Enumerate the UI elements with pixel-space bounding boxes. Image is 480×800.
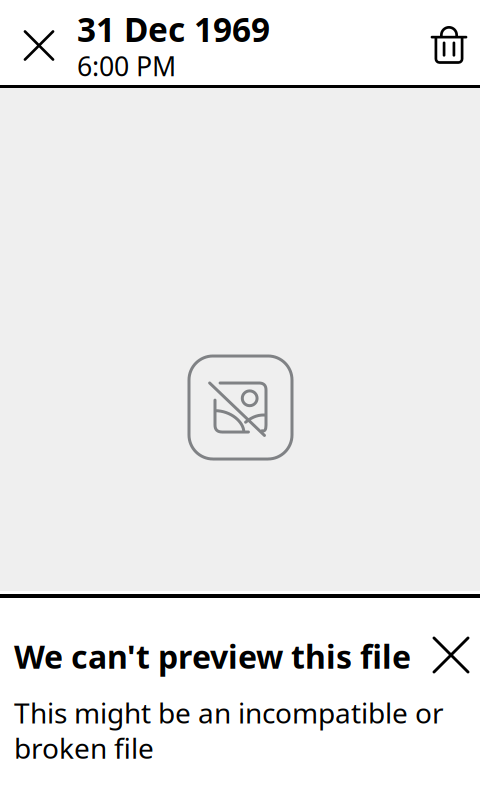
staticText: This might be an incompatible or broken … [14,694,444,766]
button[interactable]: Delete [411,2,480,87]
staticText: We can't preview this file [14,635,411,677]
button[interactable]: Dismiss [422,626,480,684]
staticText: 31 Dec 1969 [77,7,270,51]
staticText: 6:00 PM [77,48,176,84]
button[interactable]: Close [1,3,77,88]
